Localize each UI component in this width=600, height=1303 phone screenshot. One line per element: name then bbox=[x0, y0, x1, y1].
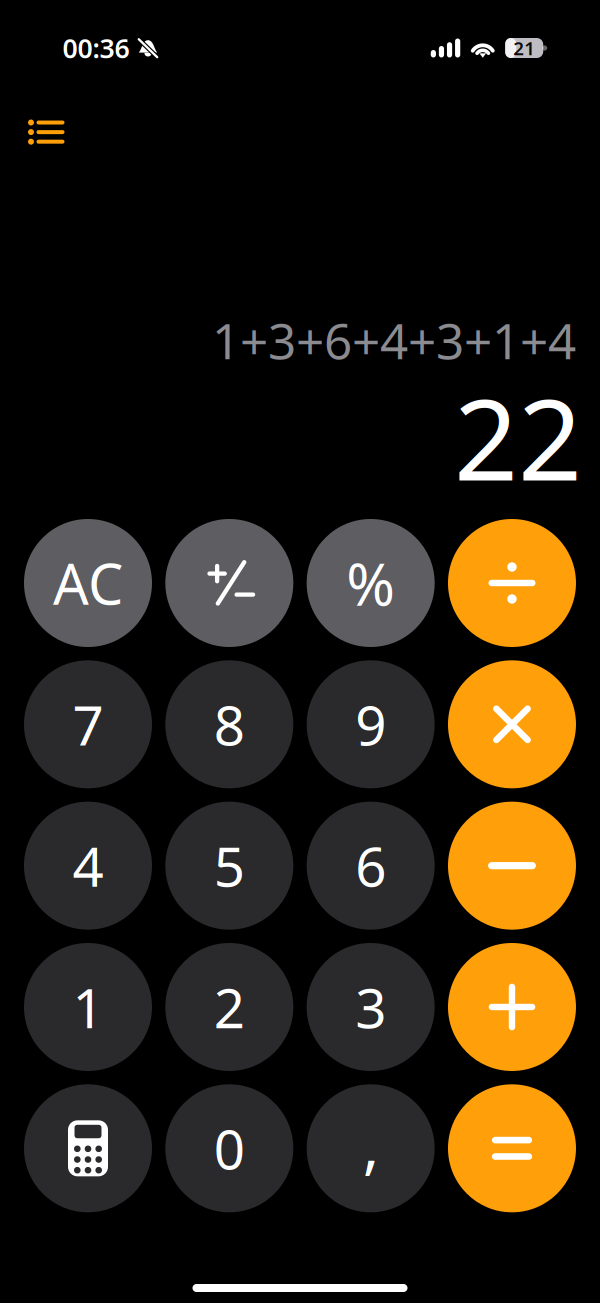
staticText: 7 bbox=[72, 688, 103, 761]
staticText: 2 bbox=[214, 971, 245, 1043]
button[interactable]: History bbox=[11, 102, 79, 160]
button[interactable]: Equals bbox=[448, 1084, 576, 1212]
staticText: 9 bbox=[355, 688, 386, 761]
button[interactable]: , bbox=[307, 1084, 435, 1212]
staticText: 8 bbox=[214, 688, 245, 761]
staticText: 22 bbox=[454, 363, 582, 511]
button[interactable]: Subtract bbox=[448, 802, 576, 930]
button[interactable]: 6 bbox=[307, 802, 435, 930]
button[interactable]: 3 bbox=[307, 943, 435, 1071]
staticText: 6 bbox=[355, 829, 386, 902]
button[interactable]: AC bbox=[24, 519, 152, 647]
button[interactable]: Add bbox=[448, 943, 576, 1071]
button[interactable]: Calculator bbox=[24, 1084, 152, 1212]
staticText: AC bbox=[53, 546, 123, 620]
staticText: 00:36 bbox=[62, 30, 129, 66]
button[interactable]: 2 bbox=[165, 943, 293, 1071]
staticText: 5 bbox=[214, 829, 245, 902]
button[interactable]: % bbox=[307, 519, 435, 647]
button[interactable]: 7 bbox=[24, 660, 152, 788]
button[interactable]: Divide bbox=[448, 519, 576, 647]
staticText: % bbox=[346, 544, 395, 622]
staticText: 4 bbox=[72, 829, 103, 902]
staticText: 1+3+6+4+3+1+4 bbox=[212, 307, 576, 373]
staticText: , bbox=[363, 1104, 379, 1185]
button[interactable]: Plus minus bbox=[165, 519, 293, 647]
button[interactable]: 9 bbox=[307, 660, 435, 788]
button[interactable]: 5 bbox=[165, 802, 293, 930]
button[interactable]: 4 bbox=[24, 802, 152, 930]
staticText: 0 bbox=[214, 1112, 245, 1185]
button[interactable]: 1 bbox=[24, 943, 152, 1071]
staticText: 21 bbox=[513, 36, 535, 60]
staticText: 3 bbox=[355, 971, 386, 1043]
button[interactable]: 8 bbox=[165, 660, 293, 788]
button[interactable]: Multiply bbox=[448, 660, 576, 788]
button[interactable]: 0 bbox=[165, 1084, 293, 1212]
staticText: 1 bbox=[72, 971, 103, 1043]
